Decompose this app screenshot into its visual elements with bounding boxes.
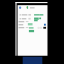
button[interactable]: Document preview — [0, 0, 64, 64]
